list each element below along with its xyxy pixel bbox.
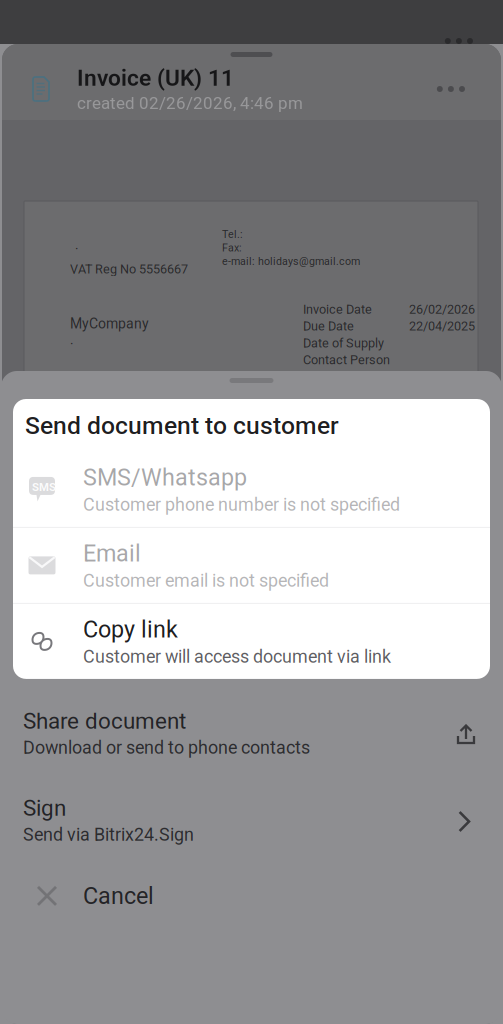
button[interactable]: SMS	[13, 452, 490, 527]
staticText: Customer will access document via link	[83, 646, 391, 667]
staticText: Share document	[23, 708, 186, 734]
button[interactable]: Email	[13, 528, 490, 603]
staticText: Date of Supply	[303, 336, 384, 350]
staticText: VAT Reg No 5556667	[70, 262, 188, 276]
button[interactable]: Cancel	[1, 859, 502, 933]
staticText: Fax:	[222, 241, 242, 254]
staticText: Email	[83, 540, 141, 567]
staticText: Customer phone number is not specified	[83, 494, 400, 515]
staticText: Invoice Date	[303, 302, 372, 317]
staticText: .	[70, 332, 74, 347]
staticText: .	[75, 237, 79, 253]
staticText: Send document to customer	[25, 411, 339, 440]
staticText: Contact Person	[303, 352, 390, 367]
staticText: Sign	[23, 795, 66, 821]
staticText: Customer email is not specified	[83, 570, 329, 591]
staticText: Cancel	[83, 882, 154, 909]
staticText: Download or send to phone contacts	[23, 737, 310, 758]
button[interactable]: Share document	[1, 679, 502, 769]
staticText: 22/04/2025	[409, 319, 475, 334]
button[interactable]: Copy link	[13, 604, 490, 679]
staticText: Copy link	[83, 616, 178, 643]
staticText: Tel.:	[222, 228, 243, 240]
staticText: MyCompany	[70, 315, 149, 332]
staticText: Send via Bitrix24.Sign	[23, 824, 194, 845]
staticText: created 02/26/2026, 4:46 pm	[77, 93, 303, 113]
staticText: SMS	[32, 480, 56, 494]
staticText: Invoice (UK) 11	[77, 65, 234, 91]
button[interactable]: Sign	[1, 769, 502, 859]
staticText: Due Date	[303, 319, 354, 334]
staticText: e-mail: holidays@gmail.com	[222, 255, 360, 267]
staticText: SMS/Whatsapp	[83, 464, 247, 491]
staticText: 26/02/2026	[409, 302, 475, 317]
